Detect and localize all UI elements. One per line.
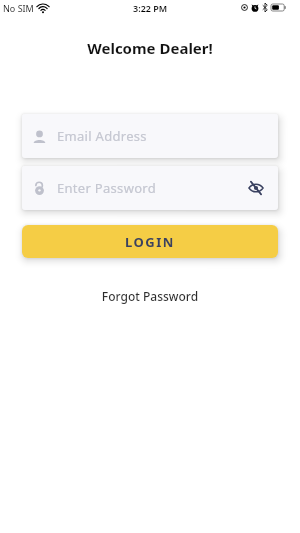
button[interactable]: Forgot Password [0, 288, 300, 304]
button[interactable]: LOGIN [22, 225, 278, 258]
staticText: 3:22 PM [133, 2, 168, 14]
staticText: No SIM [3, 2, 34, 14]
staticText: Email Address [57, 127, 147, 145]
button[interactable]: Enter Password [22, 166, 278, 210]
staticText: LOGIN [125, 233, 175, 251]
button[interactable]: Email Address [22, 114, 278, 158]
staticText: Enter Password [57, 179, 157, 197]
staticText: Welcome Dealer! [0, 38, 300, 58]
